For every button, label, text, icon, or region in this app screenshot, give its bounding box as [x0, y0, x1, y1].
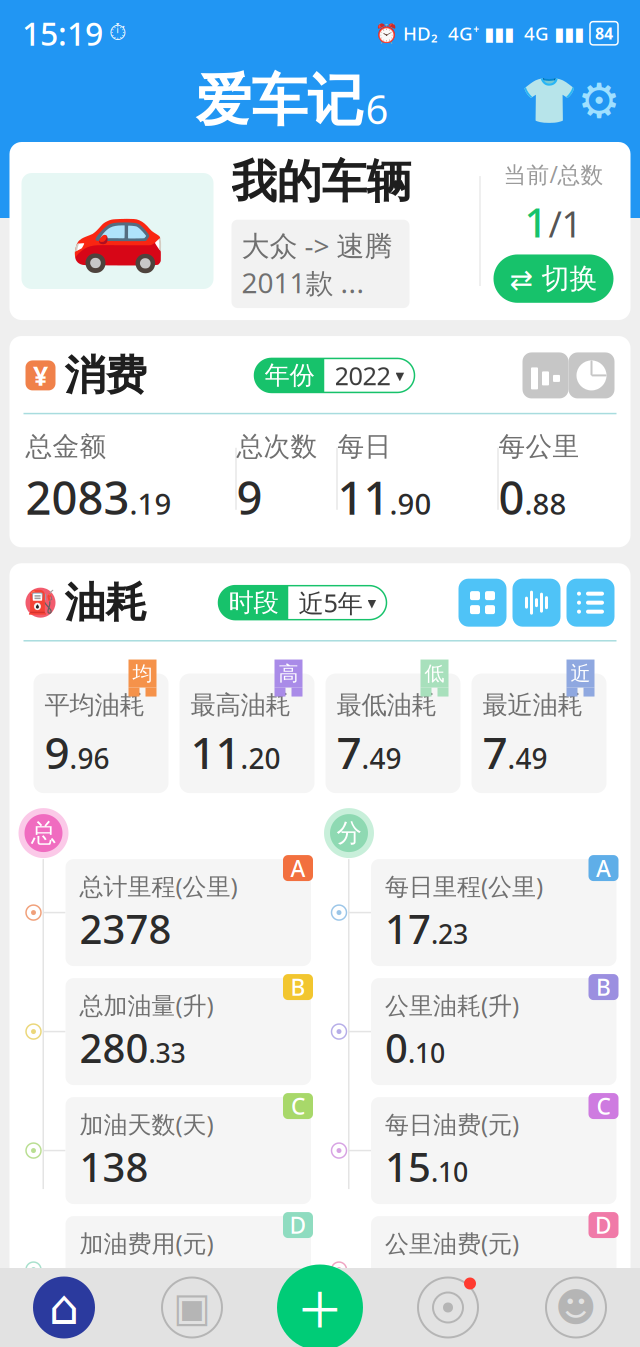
- staticText: .49: [507, 739, 547, 777]
- staticText: 👕: [521, 75, 577, 127]
- staticText: .88: [524, 484, 566, 523]
- staticText: B: [596, 972, 611, 1002]
- staticText: 280: [79, 1021, 148, 1074]
- staticText: C: [291, 1091, 305, 1121]
- button[interactable]: Discover: [384, 1277, 512, 1337]
- staticText: .33: [148, 1035, 185, 1070]
- button[interactable]: Themes: [524, 76, 574, 126]
- button[interactable]: Settings: [574, 76, 624, 126]
- staticText: 总计里程(公里): [79, 870, 237, 902]
- staticText: 总次数: [236, 430, 317, 463]
- staticText: ⏱: [103, 22, 127, 44]
- staticText: 每日: [337, 430, 391, 463]
- staticText: 1: [524, 195, 547, 248]
- staticText: 爱车记: [195, 66, 363, 135]
- staticText: 最近油耗: [482, 689, 582, 721]
- button[interactable]: Profile: [512, 1277, 640, 1337]
- staticText: C: [596, 1091, 610, 1121]
- button[interactable]: Grid view: [458, 579, 506, 627]
- staticText: .49: [361, 739, 401, 777]
- staticText: +: [298, 1258, 341, 1347]
- staticText: 加油费用(元): [79, 1227, 213, 1259]
- staticText: ⚙: [577, 74, 620, 128]
- staticText: 最高油耗: [190, 689, 290, 721]
- staticText: D: [595, 1210, 612, 1240]
- staticText: 6: [365, 82, 388, 135]
- button[interactable]: 年份: [254, 358, 414, 392]
- staticText: 我的车辆: [231, 154, 411, 210]
- staticText: 分: [336, 817, 361, 849]
- staticText: ☻: [555, 1285, 597, 1330]
- staticText: 7: [482, 723, 507, 781]
- staticText: 近5年: [298, 586, 362, 619]
- staticText: .90: [389, 484, 431, 523]
- staticText: 当前/总数: [503, 159, 603, 189]
- staticText: 公里油费(元): [385, 1227, 519, 1259]
- staticText: 消费: [64, 350, 146, 401]
- staticText: ⌂: [49, 1280, 79, 1335]
- staticText: .20: [240, 739, 280, 777]
- staticText: 2083: [25, 467, 129, 527]
- staticText: ▾: [395, 366, 404, 385]
- staticText: ▣: [173, 1285, 211, 1330]
- staticText: 大众 -> 速腾 2011款 ...: [241, 227, 399, 301]
- staticText: 2022: [334, 359, 390, 392]
- staticText: A: [596, 853, 611, 883]
- staticText: 均: [132, 661, 152, 686]
- staticText: 高: [278, 661, 298, 686]
- staticText: ⛽: [26, 590, 54, 616]
- staticText: B: [290, 972, 305, 1002]
- staticText: 2083: [79, 1259, 171, 1312]
- staticText: .10: [431, 1154, 468, 1189]
- staticText: 0: [385, 1021, 408, 1074]
- staticText: 油耗: [64, 577, 146, 628]
- staticText: 9: [44, 723, 69, 781]
- staticText: 时段: [228, 587, 278, 618]
- staticText: 138: [79, 1140, 148, 1193]
- staticText: .23: [431, 916, 468, 951]
- staticText: 11: [337, 467, 389, 527]
- button[interactable]: 🚗: [9, 142, 630, 320]
- button[interactable]: Modules: [128, 1277, 256, 1337]
- staticText: .19: [129, 484, 171, 523]
- staticText: 总金额: [25, 430, 106, 463]
- staticText: ⇄ 切换: [509, 261, 597, 296]
- button[interactable]: Chart view: [512, 579, 560, 627]
- staticText: 🚗: [69, 187, 165, 275]
- staticText: 2378: [79, 902, 171, 955]
- button[interactable]: 时段: [218, 586, 386, 620]
- staticText: 每日油费(元): [385, 1108, 519, 1140]
- staticText: 7: [336, 723, 361, 781]
- button[interactable]: List view: [566, 579, 614, 627]
- staticText: .19: [171, 1273, 208, 1308]
- staticText: 11: [190, 723, 240, 781]
- staticText: /1: [548, 199, 582, 247]
- staticText: 总加油量(升): [79, 989, 213, 1021]
- staticText: 低: [424, 661, 444, 686]
- button[interactable]: Home: [0, 1276, 128, 1338]
- staticText: 每公里: [498, 430, 579, 463]
- staticText: D: [289, 1210, 306, 1240]
- staticText: .10: [408, 1035, 445, 1070]
- staticText: 公里油耗(升): [385, 989, 519, 1021]
- staticText: .73: [408, 1273, 445, 1308]
- button[interactable]: Bar chart: [522, 352, 568, 398]
- staticText: 9: [236, 467, 262, 527]
- staticText: 年份: [264, 360, 314, 391]
- staticText: .96: [69, 739, 109, 777]
- staticText: ⏰ HD₂ 4G⁺ ▮▮▮ 4G ▮▮▮: [375, 21, 584, 46]
- staticText: 平均油耗: [44, 689, 144, 721]
- staticText: ▾: [367, 593, 376, 612]
- staticText: ¥: [33, 358, 48, 393]
- staticText: 加油天数(天): [79, 1108, 213, 1140]
- staticText: A: [290, 853, 305, 883]
- staticText: 17: [385, 902, 431, 955]
- staticText: 15:19: [22, 12, 103, 54]
- button[interactable]: Pie chart: [568, 352, 614, 398]
- button[interactable]: Add record: [256, 1258, 384, 1347]
- staticText: 84: [595, 23, 613, 44]
- staticText: 0: [498, 467, 524, 527]
- staticText: 15: [385, 1140, 431, 1193]
- staticText: 近: [570, 661, 590, 686]
- staticText: 每日里程(公里): [385, 870, 543, 902]
